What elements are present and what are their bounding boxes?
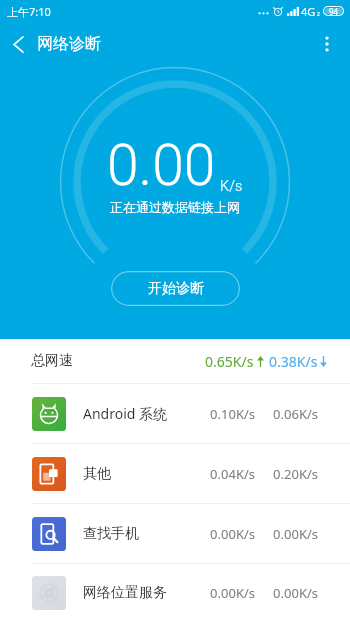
staticText: 0.00 <box>107 132 216 199</box>
button[interactable]: Back <box>0 22 37 66</box>
staticText: 网络诊断 <box>37 34 101 54</box>
button[interactable]: More options <box>303 22 350 66</box>
staticText: 开始诊断 <box>148 280 204 298</box>
staticText: 0.38K/s <box>269 352 318 371</box>
staticText: 其他 <box>83 465 111 483</box>
staticText: 4G <box>301 4 316 19</box>
staticText: 94 <box>329 6 339 16</box>
staticText: 网络位置服务 <box>83 584 167 602</box>
staticText: 上午7:10 <box>7 4 51 19</box>
staticText: 0.20K/s <box>272 465 318 483</box>
staticText: 0.00K/s <box>209 584 255 602</box>
staticText: 总网速 <box>31 352 73 370</box>
staticText: 查找手机 <box>83 525 139 543</box>
button[interactable]: Android 系统 <box>0 384 350 443</box>
staticText: 0.10K/s <box>209 405 255 423</box>
staticText: 0.65K/s <box>205 352 254 371</box>
button[interactable]: 开始诊断 <box>111 271 240 306</box>
staticText: K/s <box>220 178 243 195</box>
staticText: Android 系统 <box>83 404 168 423</box>
staticText: 0.06K/s <box>272 405 318 423</box>
button[interactable]: 网络位置服务 <box>0 564 350 622</box>
staticText: 0.00K/s <box>272 584 318 602</box>
staticText: 0.00K/s <box>209 525 255 543</box>
staticText: 0.04K/s <box>209 465 255 483</box>
staticText: 0.00K/s <box>272 525 318 543</box>
staticText: ₂ <box>317 6 320 17</box>
button[interactable]: 查找手机 <box>0 504 350 563</box>
button[interactable]: 其他 <box>0 444 350 503</box>
staticText: 正在通过数据链接上网 <box>110 199 240 215</box>
